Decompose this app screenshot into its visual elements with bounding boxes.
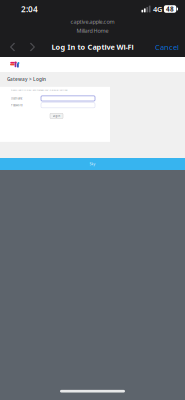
staticText: 48 xyxy=(166,5,174,13)
staticText: 4G xyxy=(153,4,162,14)
button[interactable]: Back xyxy=(5,37,20,57)
staticText: Username xyxy=(11,97,22,100)
staticText: Log In to Captive Wi-Fi xyxy=(51,42,133,52)
staticText: Millard Home xyxy=(76,27,108,34)
staticText: Cancel xyxy=(155,42,179,52)
staticText: captive.apple.com xyxy=(70,18,114,25)
staticText: 2:04 xyxy=(21,3,38,15)
staticText: Password xyxy=(11,103,23,107)
staticText: Sky xyxy=(89,162,95,166)
button[interactable]: Login xyxy=(50,113,63,119)
staticText: Gateway > Login xyxy=(7,76,46,82)
staticText: Please login to view and manage your Gat… xyxy=(10,88,67,91)
button[interactable]: Forward xyxy=(25,37,40,57)
button[interactable]: Cancel xyxy=(152,37,182,57)
staticText: Login xyxy=(52,114,60,118)
